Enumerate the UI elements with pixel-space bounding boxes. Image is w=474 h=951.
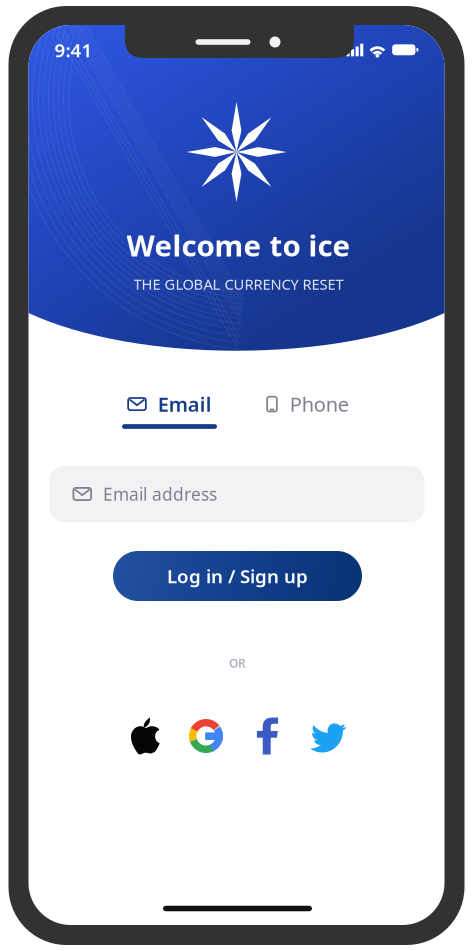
staticText: Phone: [290, 391, 349, 417]
button[interactable]: Sign in with Apple: [114, 716, 175, 756]
staticText: THE GLOBAL CURRENCY RESET: [133, 274, 343, 294]
staticText: Email address: [103, 482, 217, 505]
button[interactable]: Phone: [238, 391, 376, 431]
staticText: 9:41: [54, 38, 92, 62]
button[interactable]: Email: [100, 391, 238, 431]
button[interactable]: Sign in with Google: [175, 716, 236, 756]
button[interactable]: Log in / Sign up: [113, 551, 362, 601]
staticText: Welcome to ice: [126, 225, 350, 264]
staticText: OR: [229, 655, 246, 671]
button[interactable]: Email address: [49, 466, 424, 522]
staticText: Log in / Sign up: [167, 564, 308, 588]
button[interactable]: Sign in with Twitter: [297, 716, 358, 756]
button[interactable]: Sign in with Facebook: [236, 716, 297, 756]
staticText: Email: [158, 391, 212, 417]
